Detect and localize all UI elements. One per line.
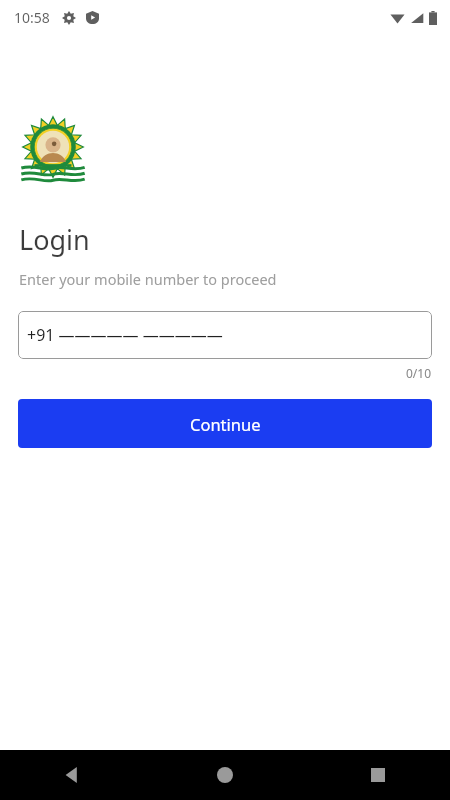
staticText: Continue bbox=[190, 413, 261, 435]
button[interactable]: Back bbox=[50, 753, 94, 797]
button[interactable]: Recent apps bbox=[356, 753, 400, 797]
staticText: Login bbox=[19, 221, 90, 258]
staticText: 10:58 bbox=[14, 8, 50, 27]
other: App logo bbox=[20, 119, 86, 189]
staticText: Enter your mobile number to proceed bbox=[19, 269, 277, 289]
staticText: +91 ————— ————— bbox=[27, 324, 223, 346]
button[interactable]: Home bbox=[203, 753, 247, 797]
button[interactable]: +91 ————— ————— bbox=[18, 311, 432, 359]
button[interactable]: Continue bbox=[18, 399, 432, 448]
staticText: 0/10 bbox=[0, 365, 431, 381]
